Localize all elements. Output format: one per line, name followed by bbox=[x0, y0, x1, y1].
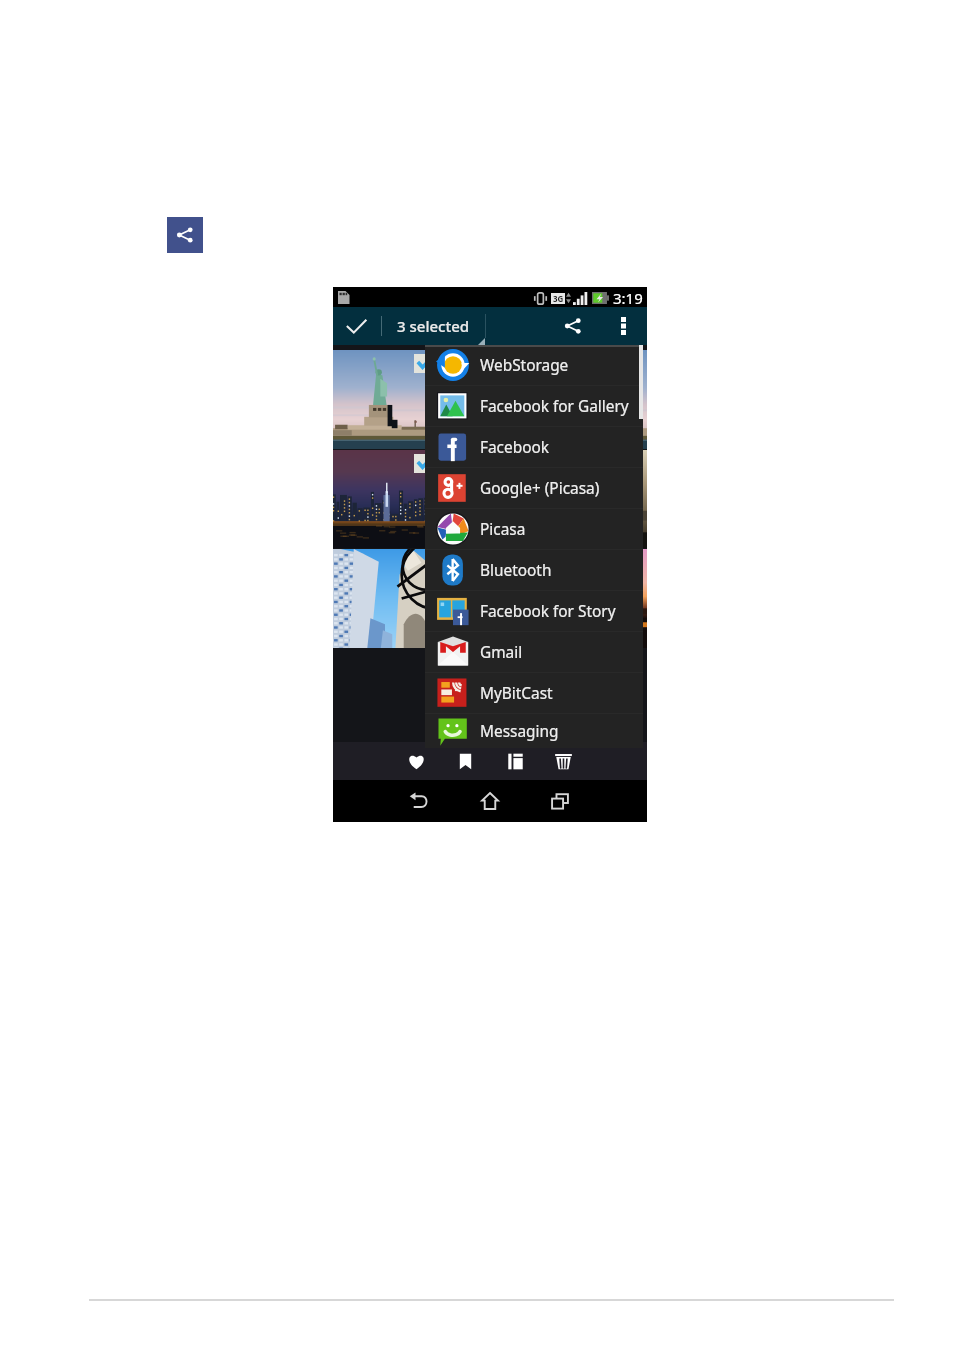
button[interactable]: Layout bbox=[491, 742, 539, 780]
staticText: 3 selected bbox=[397, 316, 470, 336]
staticText: Messaging bbox=[480, 721, 559, 742]
button[interactable]: Google+ (Picasa) bbox=[425, 468, 643, 508]
button[interactable]: Photo bbox=[333, 450, 437, 548]
button[interactable]: Share bbox=[167, 217, 203, 253]
staticText: 3:19 bbox=[613, 288, 643, 308]
button[interactable]: Bookmark bbox=[441, 742, 489, 780]
staticText: Google+ (Picasa) bbox=[480, 478, 600, 499]
button[interactable]: Photo bbox=[333, 350, 437, 449]
button[interactable]: Photo bbox=[543, 350, 647, 449]
button[interactable]: Favorite bbox=[392, 742, 440, 780]
staticText: MyBitCast bbox=[480, 683, 553, 704]
button[interactable]: Facebook for Gallery bbox=[425, 386, 643, 426]
button[interactable]: Done bbox=[338, 307, 374, 345]
button[interactable]: 3 selected bbox=[393, 307, 479, 345]
button[interactable]: Photo bbox=[438, 350, 542, 449]
staticText: Facebook for Gallery bbox=[480, 396, 629, 417]
button[interactable]: MyBitCast bbox=[425, 673, 643, 713]
button[interactable]: Picasa bbox=[425, 509, 643, 549]
button[interactable]: Photo bbox=[438, 450, 542, 548]
button[interactable]: Facebook bbox=[425, 427, 643, 467]
button[interactable]: Gmail bbox=[425, 632, 643, 672]
button[interactable]: Delete bbox=[539, 742, 587, 780]
button[interactable]: WebStorage bbox=[425, 345, 643, 385]
button[interactable]: Photo bbox=[438, 549, 542, 648]
staticText: 3G bbox=[553, 293, 564, 304]
button[interactable]: Photo bbox=[333, 549, 437, 648]
staticText: WebStorage bbox=[480, 355, 569, 376]
button[interactable]: Photo bbox=[543, 450, 647, 548]
button[interactable]: Back bbox=[389, 780, 449, 822]
button[interactable]: Bluetooth bbox=[425, 550, 643, 590]
button[interactable]: Messaging bbox=[425, 714, 643, 748]
button[interactable]: Facebook for Story bbox=[425, 591, 643, 631]
staticText: Gmail bbox=[480, 642, 523, 663]
button[interactable]: Recents bbox=[530, 780, 590, 822]
staticText: Facebook for Story bbox=[480, 601, 616, 622]
button[interactable]: Share bbox=[555, 307, 591, 345]
staticText: Picasa bbox=[480, 519, 526, 540]
staticText: Bluetooth bbox=[480, 560, 552, 581]
button[interactable]: Home bbox=[460, 780, 520, 822]
button[interactable]: More options bbox=[609, 307, 637, 345]
staticText: Facebook bbox=[480, 437, 549, 458]
button[interactable]: Photo bbox=[543, 549, 647, 648]
